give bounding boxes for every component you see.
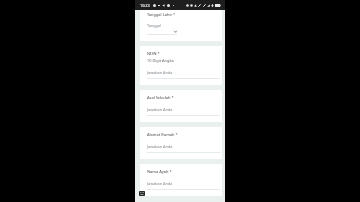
staticText: Jawaban Anda bbox=[147, 107, 173, 112]
button[interactable]: NISN * bbox=[140, 46, 222, 85]
staticText: 10:23 bbox=[140, 3, 150, 8]
staticText: Alamat Rumah * bbox=[147, 132, 178, 137]
button[interactable]: Nama Ayah * bbox=[140, 164, 222, 196]
staticText: Tanggal Lahir * bbox=[147, 12, 176, 17]
staticText: Jawaban Anda bbox=[147, 144, 173, 149]
button[interactable]: Asal Sekolah * bbox=[140, 90, 222, 122]
button[interactable]: Show keyboard bbox=[139, 191, 145, 196]
button[interactable]: Alamat Rumah * bbox=[140, 127, 222, 159]
staticText: Asal Sekolah * bbox=[147, 95, 174, 100]
button[interactable]: Tanggal Lahir * bbox=[140, 5, 222, 41]
staticText: Jawaban Anda bbox=[147, 181, 173, 186]
staticText: 10 Digit Angka bbox=[147, 58, 174, 63]
staticText: Tanggal bbox=[147, 23, 162, 28]
staticText: NISN * bbox=[147, 51, 160, 56]
staticText: Nama Ayah * bbox=[147, 169, 172, 174]
staticText: Jawaban Anda bbox=[147, 70, 173, 75]
